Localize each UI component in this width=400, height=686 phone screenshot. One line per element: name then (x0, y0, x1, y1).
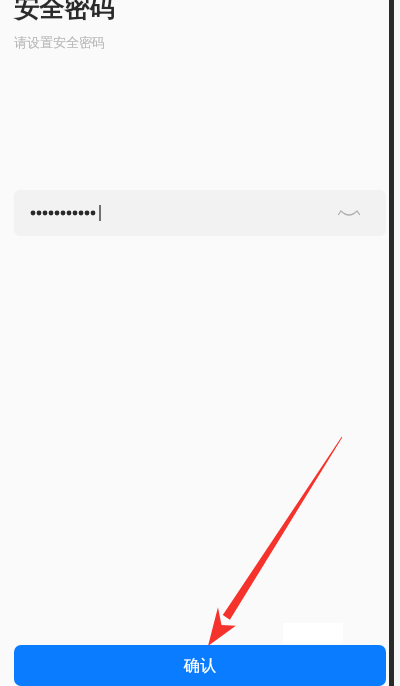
staticText: 请设置安全密码 (14, 34, 105, 50)
button[interactable]: 确认 (14, 645, 386, 686)
staticText: 安全密码 (14, 0, 114, 24)
staticText: 确认 (184, 656, 216, 676)
button[interactable]: Show password (14, 190, 386, 236)
button[interactable]: Show password (336, 200, 362, 226)
